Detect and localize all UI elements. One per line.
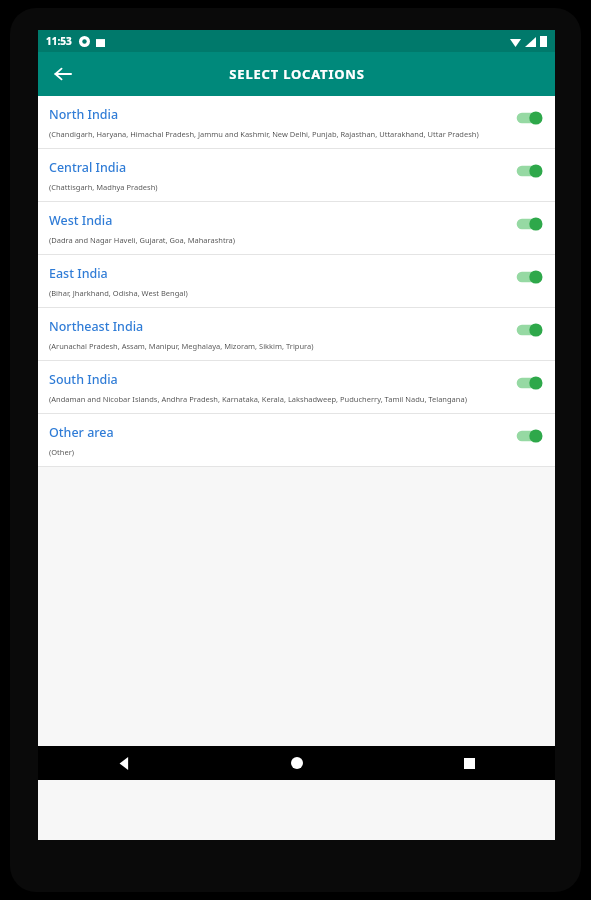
- button[interactable]: Toggle East India: [513, 266, 545, 288]
- staticText: 11:53: [46, 34, 72, 48]
- button[interactable]: Toggle West India: [513, 213, 545, 235]
- staticText: SELECT LOCATIONS: [229, 65, 365, 83]
- button[interactable]: Toggle Northeast India: [513, 319, 545, 341]
- button[interactable]: Recent apps: [383, 746, 555, 780]
- button[interactable]: Toggle Other area: [513, 425, 545, 447]
- staticText: (Chattisgarh, Madhya Pradesh): [49, 182, 158, 192]
- staticText: East India: [49, 265, 108, 282]
- staticText: (Bihar, Jharkhand, Odisha, West Bengal): [49, 288, 188, 298]
- button[interactable]: Home: [211, 746, 383, 780]
- button[interactable]: Toggle North India: [513, 107, 545, 129]
- button[interactable]: Central India: [38, 149, 555, 202]
- staticText: (Chandigarh, Haryana, Himachal Pradesh, …: [49, 129, 479, 139]
- button[interactable]: North India: [38, 96, 555, 149]
- staticText: West India: [49, 212, 113, 229]
- staticText: North India: [49, 106, 119, 123]
- staticText: (Other): [49, 447, 75, 457]
- button[interactable]: South India: [38, 361, 555, 414]
- staticText: (Andaman and Nicobar Islands, Andhra Pra…: [49, 394, 467, 404]
- button[interactable]: Back: [44, 55, 82, 93]
- button[interactable]: Toggle Central India: [513, 160, 545, 182]
- button[interactable]: Northeast India: [38, 308, 555, 361]
- staticText: South India: [49, 371, 118, 388]
- button[interactable]: Toggle South India: [513, 372, 545, 394]
- button[interactable]: Other area: [38, 414, 555, 467]
- staticText: (Arunachal Pradesh, Assam, Manipur, Megh…: [49, 341, 314, 351]
- staticText: Northeast India: [49, 318, 144, 335]
- button[interactable]: Back: [38, 746, 211, 780]
- staticText: (Dadra and Nagar Haveli, Gujarat, Goa, M…: [49, 235, 236, 245]
- button[interactable]: East India: [38, 255, 555, 308]
- staticText: Central India: [49, 159, 127, 176]
- staticText: Other area: [49, 424, 114, 441]
- button[interactable]: West India: [38, 202, 555, 255]
